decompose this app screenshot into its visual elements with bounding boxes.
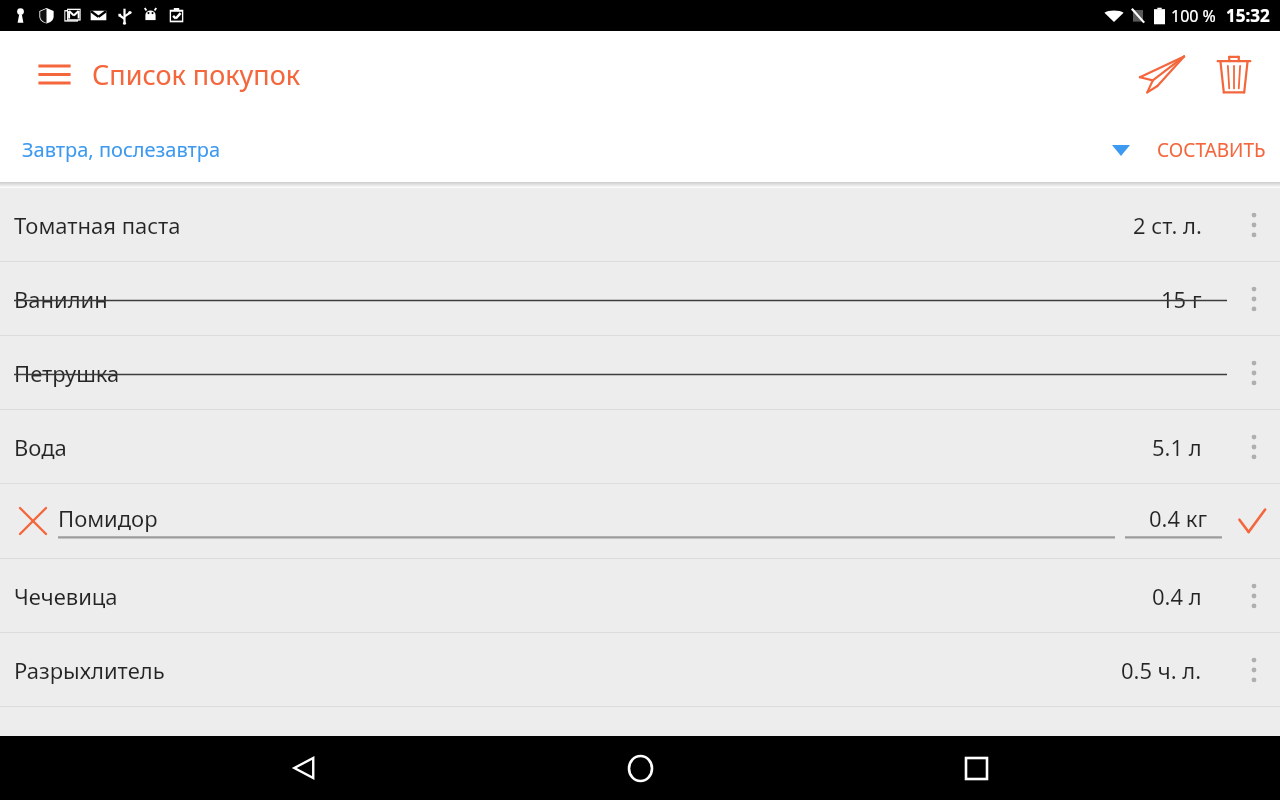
button[interactable]: Ванилин <box>0 262 1280 335</box>
button[interactable]: Разрыхлитель <box>0 633 1280 706</box>
button[interactable]: Назад <box>272 736 336 800</box>
button[interactable]: Меню <box>26 46 82 102</box>
button[interactable]: Петрушка <box>0 336 1280 409</box>
staticText: СОСТАВИТЬ <box>1157 137 1266 163</box>
button[interactable]: Удалить <box>1202 42 1266 106</box>
staticText: Помидор <box>58 503 158 533</box>
button[interactable]: Отправить <box>1130 42 1194 106</box>
staticText: 100 % <box>1171 5 1216 27</box>
button[interactable]: Ещё <box>1228 262 1280 335</box>
staticText: 15:32 <box>1226 4 1270 27</box>
staticText: Петрушка <box>14 358 120 388</box>
button[interactable]: Завтра, послезавтра <box>22 136 221 163</box>
button[interactable]: Ещё <box>1228 336 1280 409</box>
staticText: 5.1 л <box>1152 432 1202 462</box>
button[interactable]: Обзор <box>944 736 1008 800</box>
button[interactable]: Чечевица <box>0 559 1280 632</box>
staticText: Ванилин <box>14 284 108 314</box>
button[interactable]: Ещё <box>1228 410 1280 483</box>
button[interactable]: Ещё <box>1228 188 1280 261</box>
button[interactable]: Развернуть <box>1097 126 1145 174</box>
staticText: 0.5 ч. л. <box>1121 655 1202 685</box>
button[interactable]: Подтвердить <box>1224 484 1280 558</box>
staticText: 2 ст. л. <box>1133 210 1202 240</box>
button[interactable]: Ещё <box>1228 633 1280 706</box>
staticText: Разрыхлитель <box>14 655 165 685</box>
staticText: 0.4 кг <box>1149 503 1208 533</box>
button[interactable]: Томатная паста <box>0 188 1280 261</box>
staticText: Вода <box>14 432 67 462</box>
button[interactable]: Отменить <box>12 500 54 542</box>
staticText: 0.4 л <box>1152 581 1202 611</box>
button[interactable]: Домой <box>608 736 672 800</box>
button[interactable]: Вода <box>0 410 1280 483</box>
button[interactable]: Ещё <box>1228 559 1280 632</box>
staticText: Список покупок <box>92 56 301 93</box>
staticText: Томатная паста <box>14 210 181 240</box>
button[interactable]: СОСТАВИТЬ <box>1145 127 1278 173</box>
staticText: 15 г <box>1161 284 1202 314</box>
staticText: Чечевица <box>14 581 118 611</box>
